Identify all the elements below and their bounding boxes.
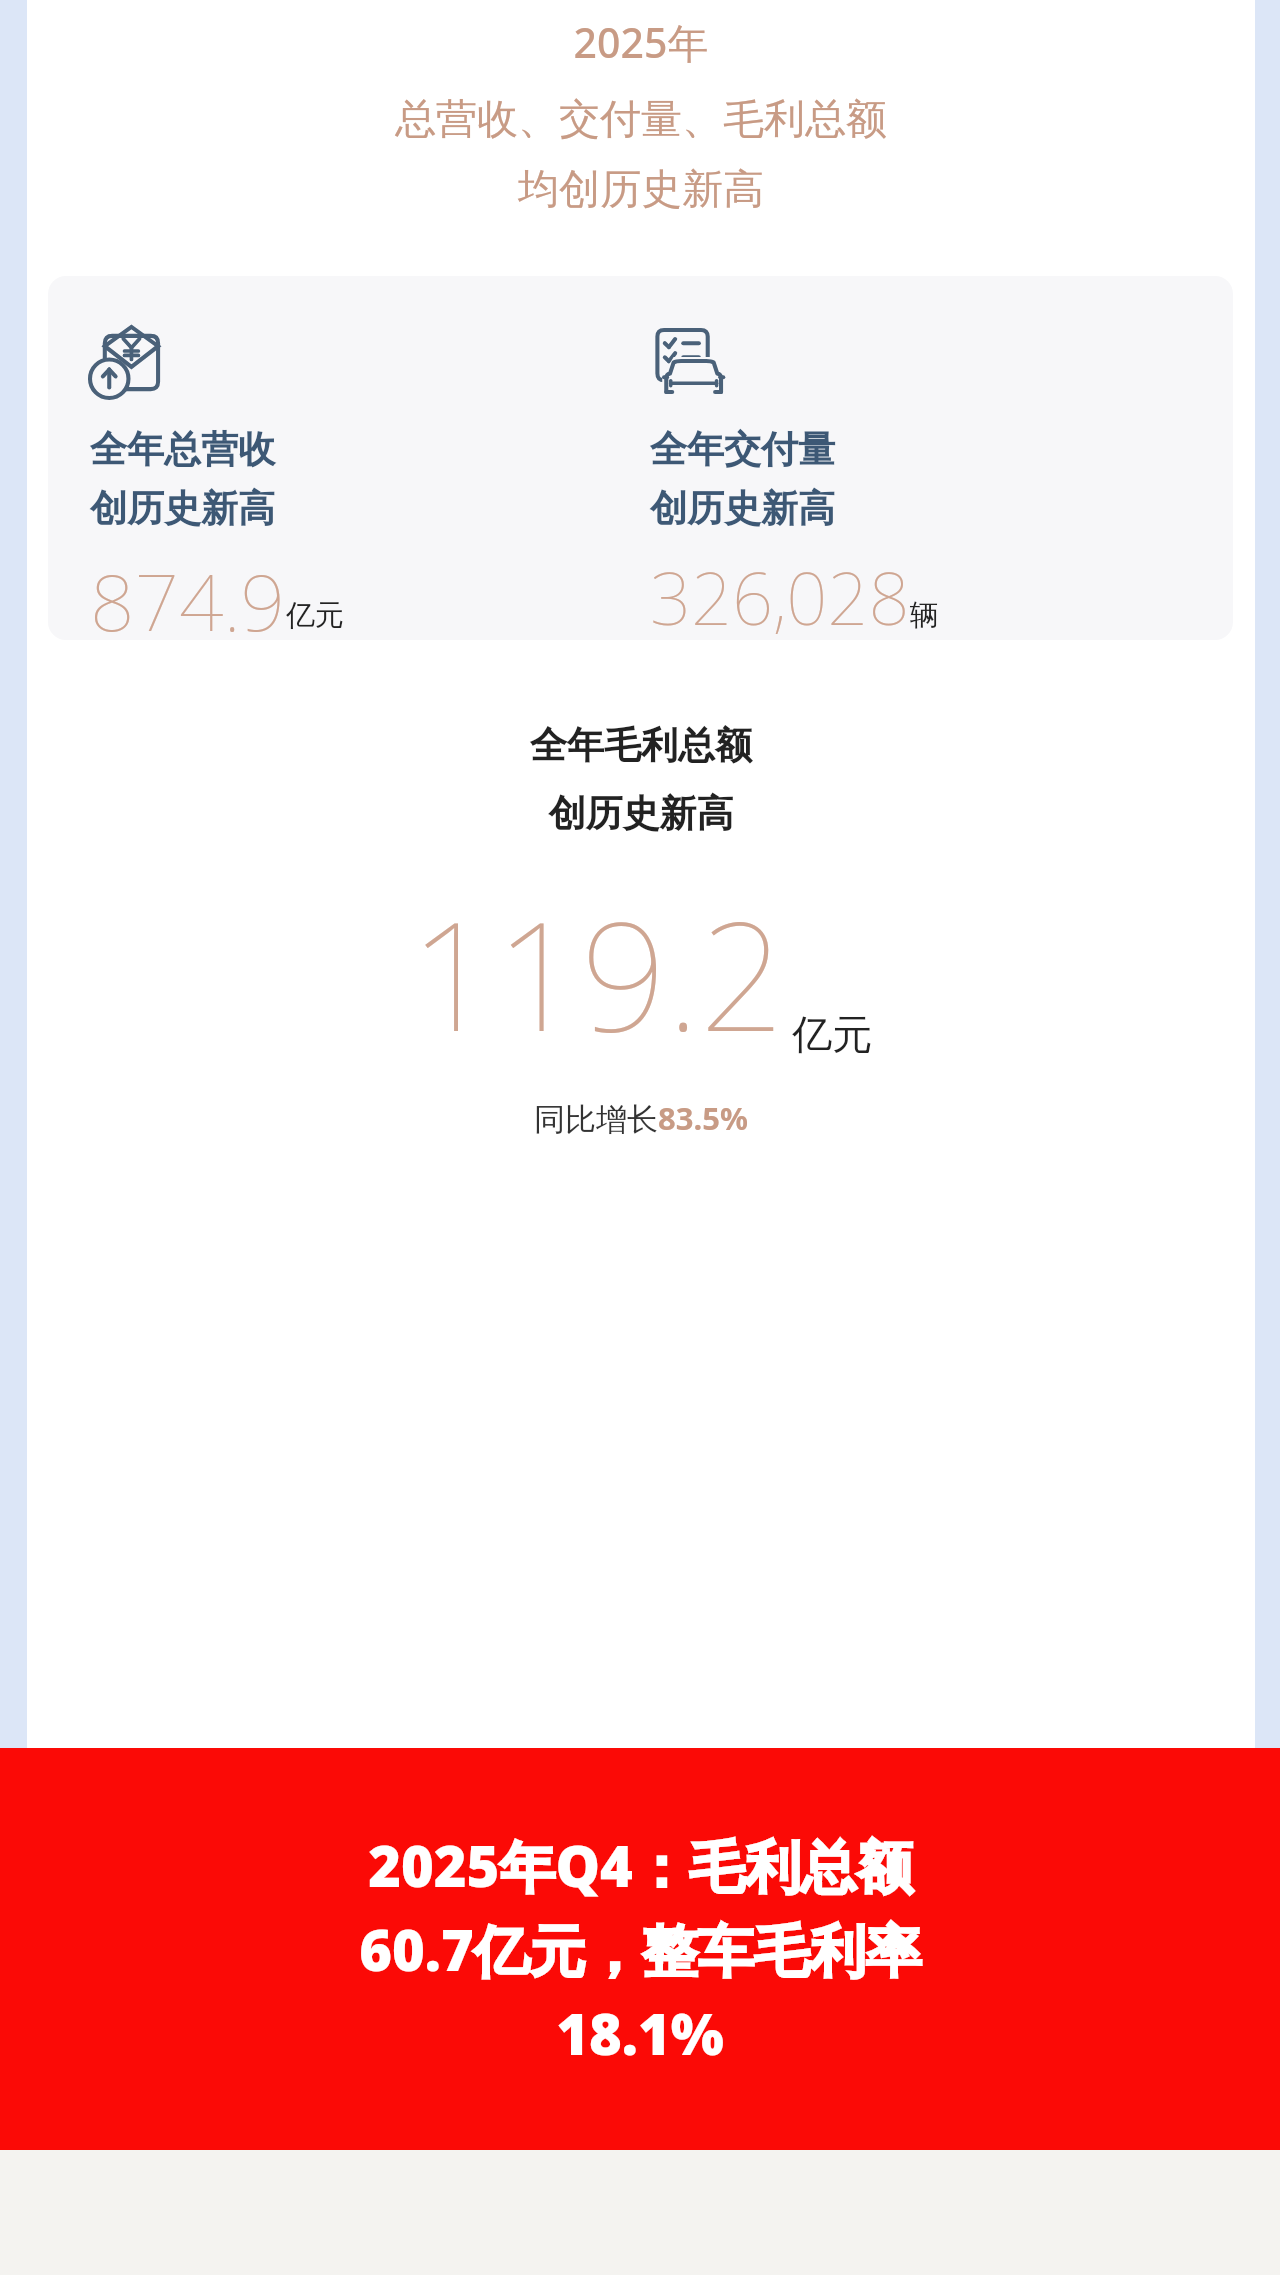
staticText: 同比增长83.5% xyxy=(27,1097,1255,1139)
staticText: 亿元 xyxy=(792,1009,872,1059)
staticText: 60.7亿元，整车毛利率 xyxy=(359,1911,922,1987)
staticText: 创历史新高 xyxy=(27,790,1255,837)
staticText: 326,028 xyxy=(650,548,910,640)
other: Deliveries xyxy=(650,324,724,398)
staticText: 2025年Q4：毛利总额 xyxy=(368,1827,913,1903)
staticText: 全年毛利总额 xyxy=(27,722,1255,769)
staticText: 亿元 xyxy=(286,597,344,634)
staticText: 创历史新高 xyxy=(90,485,275,532)
staticText: 18.1% xyxy=(556,1995,724,2071)
staticText: 辆 xyxy=(910,597,939,634)
button[interactable]: Revenue xyxy=(48,276,1233,640)
staticText: 全年总营收 xyxy=(90,426,275,473)
staticText: 119.2 xyxy=(410,871,786,1075)
staticText: 创历史新高 xyxy=(650,485,835,532)
staticText: 全年交付量 xyxy=(650,426,835,473)
other: Revenue xyxy=(90,324,164,398)
staticText: 874.9 xyxy=(90,548,286,640)
button[interactable]: 2025年Q4：毛利总额 xyxy=(0,1748,1280,2150)
staticText: 总营收、交付量、毛利总额 xyxy=(27,94,1255,146)
staticText: 2025年 xyxy=(27,14,1255,70)
staticText: 均创历史新高 xyxy=(27,164,1255,216)
